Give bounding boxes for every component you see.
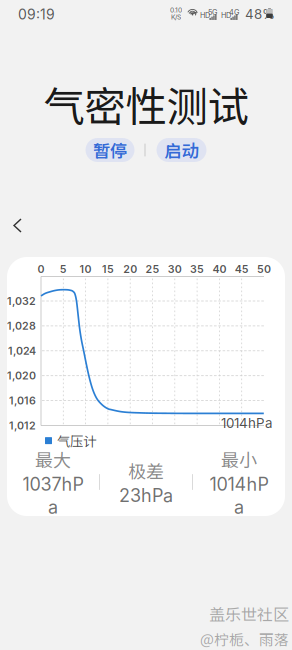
staticText: 25 [145,262,159,275]
staticText: 40 [212,262,226,275]
staticText: HD [200,11,210,20]
staticText: 09:19 [18,6,55,23]
staticText: 10 [80,262,92,275]
staticText: HD [221,11,231,20]
staticText: 15 [102,262,114,275]
staticText: 5 [60,262,67,275]
staticText: 暂停 [93,137,127,163]
button[interactable]: 启动 [156,138,206,162]
staticText: a [48,496,58,518]
staticText: 极差 [128,458,164,484]
staticText: 1014hPa [221,415,272,431]
staticText: 1,020 [7,369,36,382]
staticText: 1037hP [22,473,83,495]
staticText: 20 [123,262,137,275]
staticText: a [234,496,244,518]
staticText: 35 [190,262,204,275]
staticText: 1,028 [7,319,36,332]
staticText: 1,032 [7,294,36,307]
button[interactable]: Back [14,219,38,243]
staticText: 最大 [35,446,71,472]
staticText: 50 [257,262,271,275]
staticText: 23hPa [119,485,173,506]
staticText: 气压计 [57,431,96,450]
staticText: 1014hP [209,473,268,495]
staticText: 气密性测试 [43,74,248,134]
staticText: 盖乐世社区 [209,602,289,625]
staticText: 48% [245,6,275,22]
staticText: 45 [235,262,249,275]
staticText: 1,024 [8,344,36,357]
staticText: 启动 [164,137,198,163]
staticText: 1,016 [9,394,36,407]
staticText: 0.10 [170,6,182,14]
staticText: 0 [37,262,44,275]
staticText: 5G [208,8,217,17]
staticText: 最小 [221,446,257,472]
staticText: 4G [229,8,239,17]
staticText: @柠栀、雨落 [200,628,289,649]
staticText: K/S [171,13,181,21]
staticText: 30 [168,262,182,275]
staticText: 1,012 [9,419,36,432]
button[interactable]: 暂停 [85,138,134,162]
